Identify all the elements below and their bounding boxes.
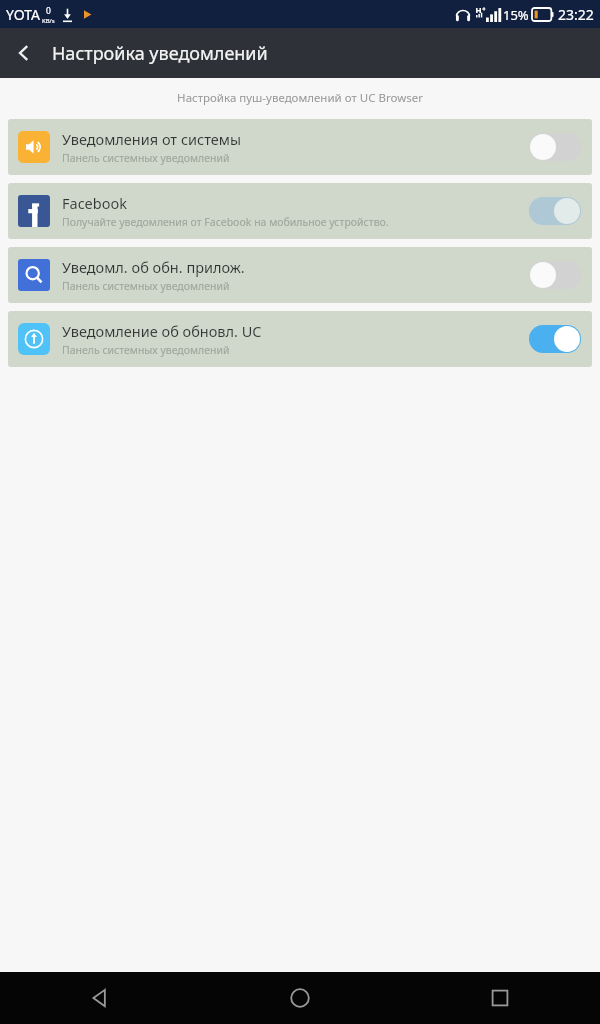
staticText: Панель системных уведомлений [62,343,230,357]
staticText: Уведомления от системы [62,129,241,149]
staticText: Facebook [62,193,128,213]
button[interactable]: Уведомл. об обн. прилож. [8,247,592,303]
staticText: Получайте уведомления от Facebook на моб… [62,215,389,229]
staticText: Уведомл. об обн. прилож. [62,257,245,277]
staticText: KB/s [42,17,55,25]
staticText: 0 [46,5,51,17]
button[interactable]: Toggle [528,323,582,355]
button[interactable]: Back [0,972,200,1024]
button[interactable]: Уведомления от системы [8,119,592,175]
staticText: 15% [503,6,529,24]
staticText: Панель системных уведомлений [62,151,230,165]
button[interactable]: Уведомление об обновл. UC [8,311,592,367]
staticText: Панель системных уведомлений [62,279,230,293]
button[interactable]: Back [0,29,48,77]
staticText: YOTA [6,5,40,24]
button[interactable]: Home [200,972,400,1024]
button[interactable]: Toggle [528,131,582,163]
staticText: Уведомление об обновл. UC [62,321,262,341]
button[interactable]: Facebook [8,183,592,239]
button[interactable]: Toggle [528,259,582,291]
staticText: 23:22 [558,5,594,24]
staticText: Настройка уведомлений [52,41,268,66]
button[interactable]: Recent apps [400,972,600,1024]
button[interactable]: Toggle [528,195,582,227]
staticText: Настройка пуш-уведомлений от UC Browser [12,90,588,106]
